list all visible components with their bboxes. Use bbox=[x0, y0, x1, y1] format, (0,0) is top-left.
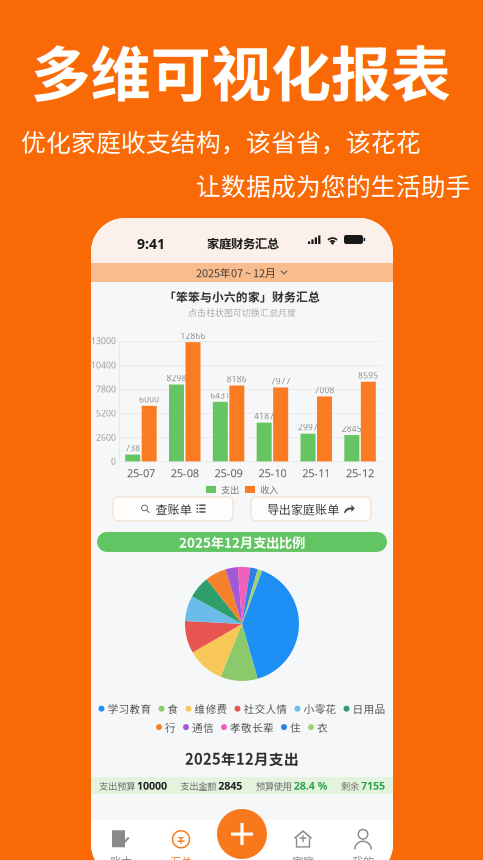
staticText: 日用品 bbox=[352, 701, 385, 716]
staticText: 维修费 bbox=[194, 701, 227, 716]
button[interactable]: 账本 bbox=[91, 826, 151, 860]
staticText: 收入 bbox=[260, 483, 278, 496]
staticText: 7977 bbox=[271, 375, 291, 387]
staticText: 支出预算 bbox=[99, 779, 135, 792]
staticText: 5200 bbox=[96, 407, 116, 419]
staticText: 剩余 bbox=[341, 779, 359, 792]
button[interactable]: 汇总 bbox=[151, 826, 211, 860]
staticText: 28.4 % bbox=[294, 778, 328, 793]
staticText: 多维可视化报表 bbox=[31, 27, 451, 114]
staticText: 优化家庭收支结构，该省省，该花花 bbox=[21, 123, 421, 159]
staticText: 让数据成为您的生活助手 bbox=[196, 167, 471, 203]
staticText: 8298 bbox=[166, 372, 186, 384]
staticText: 25-09 bbox=[215, 465, 243, 480]
staticText: 25-10 bbox=[258, 465, 286, 480]
staticText: 我的 bbox=[352, 853, 374, 860]
staticText: 2025年12月支出 bbox=[185, 748, 299, 769]
staticText: 2845 bbox=[218, 778, 242, 793]
staticText: 738 bbox=[125, 442, 140, 454]
staticText: 点击柱状图可切换汇总月度 bbox=[188, 306, 296, 319]
staticText: 2600 bbox=[96, 431, 116, 443]
staticText: 13000 bbox=[91, 335, 116, 347]
staticText: 预算使用 bbox=[256, 779, 292, 792]
staticText: 支出金额 bbox=[180, 779, 216, 792]
staticText: 10000 bbox=[137, 778, 167, 793]
staticText: 9:41 bbox=[137, 234, 165, 253]
staticText: 7155 bbox=[361, 778, 385, 793]
staticText: 8595 bbox=[358, 370, 378, 381]
staticText: 行 bbox=[165, 719, 176, 735]
button[interactable]: 查账单 bbox=[113, 497, 233, 521]
staticText: 导出家庭账单 bbox=[267, 500, 339, 518]
button[interactable]: 我的 bbox=[333, 826, 393, 860]
staticText: 查账单 bbox=[155, 500, 191, 518]
staticText: 住 bbox=[290, 719, 301, 735]
staticText: 10400 bbox=[91, 359, 116, 371]
staticText: 7800 bbox=[96, 383, 116, 395]
staticText: 小零花 bbox=[303, 701, 336, 716]
staticText: 通信 bbox=[192, 719, 214, 735]
staticText: 支出 bbox=[221, 483, 239, 496]
staticText: 汇总 bbox=[170, 853, 192, 860]
staticText: 6000 bbox=[139, 394, 159, 405]
button[interactable]: 导出家庭账单 bbox=[251, 497, 371, 521]
staticText: 社交人情 bbox=[243, 701, 287, 716]
staticText: 学习教育 bbox=[107, 701, 151, 716]
staticText: 衣 bbox=[317, 719, 328, 735]
staticText: 「笨笨与小六的家」财务汇总 bbox=[164, 288, 320, 305]
staticText: 账本 bbox=[110, 853, 132, 860]
staticText: 25-11 bbox=[302, 465, 330, 480]
staticText: 家庭 bbox=[292, 853, 314, 860]
staticText: 7008 bbox=[314, 384, 334, 396]
staticText: 孝敬长辈 bbox=[230, 719, 274, 735]
button[interactable]: 家庭 bbox=[273, 826, 333, 860]
staticText: 2845 bbox=[342, 423, 362, 434]
staticText: 25-12 bbox=[346, 465, 374, 480]
staticText: 0 bbox=[111, 455, 116, 467]
staticText: 4187 bbox=[254, 410, 274, 422]
staticText: 12866 bbox=[180, 330, 205, 341]
button[interactable]: 2025年07 ~ 12月 bbox=[91, 263, 393, 282]
staticText: 8186 bbox=[227, 373, 247, 385]
staticText: 25-08 bbox=[171, 465, 199, 480]
staticText: 2025年12月支出比例 bbox=[179, 532, 305, 552]
staticText: 2025年07 ~ 12月 bbox=[196, 265, 276, 280]
staticText: 6431 bbox=[210, 390, 230, 401]
staticText: 2997 bbox=[298, 421, 318, 433]
button[interactable]: New entry bbox=[214, 806, 270, 860]
staticText: 食 bbox=[167, 701, 178, 716]
staticText: 家庭财务汇总 bbox=[207, 234, 279, 252]
staticText: 25-07 bbox=[127, 465, 155, 480]
